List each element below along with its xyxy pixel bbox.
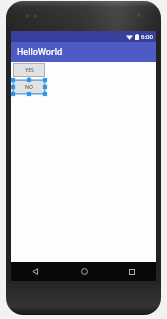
staticText: 6:00 — [141, 33, 153, 41]
button[interactable]: NO — [13, 80, 45, 94]
button[interactable]: Recent apps — [108, 262, 156, 281]
staticText: HelloWorld — [17, 46, 63, 58]
other: Selected NO button — [11, 76, 51, 98]
staticText: YES — [25, 67, 34, 74]
staticText: NO — [25, 84, 33, 91]
button[interactable]: Back — [11, 262, 60, 281]
button[interactable]: Home — [60, 262, 108, 281]
button[interactable]: YES — [13, 63, 45, 77]
